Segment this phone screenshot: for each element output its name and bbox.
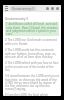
button[interactable]: Action <box>55 6 60 11</box>
button[interactable]: Deuteronomy 5 <box>10 6 37 11</box>
staticText: Deuteronomy 5 <box>12 7 35 11</box>
staticText: 4 The LORD talked with you face to face … <box>5 61 59 72</box>
staticText: 2 The LORD our God made a covenant with … <box>5 38 59 46</box>
button[interactable]: Action <box>45 6 50 11</box>
staticText: 6 I am the LORD thy God, which brought t… <box>5 93 59 96</box>
button[interactable]: Action <box>50 6 55 11</box>
staticText: 3 The LORD made not this covenant with o… <box>5 48 59 59</box>
button[interactable]: Menu <box>4 6 9 11</box>
staticText: 1 And Moses called all Israel, and said … <box>6 22 58 36</box>
staticText: 5 (I stood between the LORD and you at t… <box>5 74 59 91</box>
button[interactable]: 1 And Moses called all Israel, and said … <box>5 22 59 36</box>
staticText: Deuteronomy 5 <box>5 17 29 21</box>
